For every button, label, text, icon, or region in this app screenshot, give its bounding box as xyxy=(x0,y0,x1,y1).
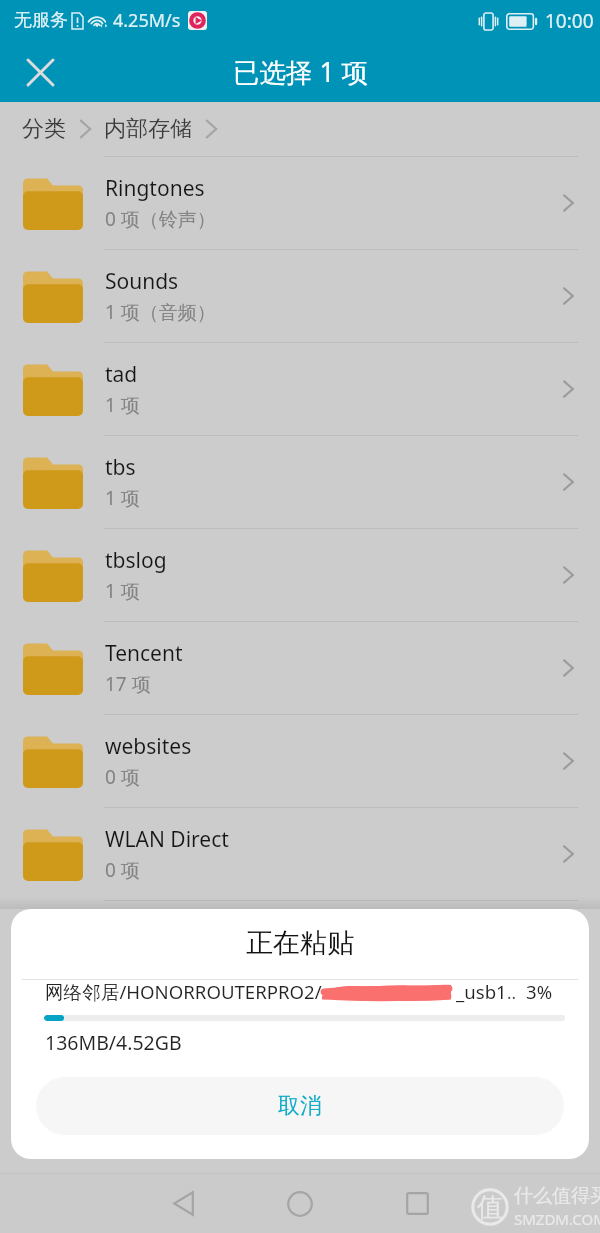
staticText: 1 项 xyxy=(105,392,140,418)
button[interactable]: Recents xyxy=(386,1174,448,1233)
staticText: 取消 xyxy=(278,1092,322,1120)
button[interactable]: WLAN Direct xyxy=(0,808,600,901)
staticText: Sounds xyxy=(105,267,179,296)
button[interactable]: Home xyxy=(269,1174,331,1233)
staticText: 4.25M/s xyxy=(113,8,181,33)
staticText: 136MB/4.52GB xyxy=(45,1029,182,1056)
button[interactable]: websites xyxy=(0,715,600,808)
button[interactable]: tbslog xyxy=(0,529,600,622)
staticText: WLAN Direct xyxy=(105,825,229,854)
staticText: 17 项 xyxy=(105,671,151,697)
staticText: 值 xyxy=(477,1191,503,1224)
button[interactable]: Tencent xyxy=(0,622,600,715)
button[interactable]: 内部存储 xyxy=(104,115,224,143)
button[interactable]: Back xyxy=(152,1174,214,1233)
staticText: 1 项 xyxy=(105,485,140,511)
button[interactable]: 分类 xyxy=(22,115,104,143)
staticText: SMZDM.COM xyxy=(514,1209,600,1229)
staticText: tbs xyxy=(105,453,136,482)
staticText: 内部存储 xyxy=(104,115,192,143)
staticText: 什么值得买 xyxy=(514,1184,600,1208)
staticText: 0 项 xyxy=(105,857,140,883)
button[interactable]: Sounds xyxy=(0,250,600,343)
button[interactable]: tbs xyxy=(0,436,600,529)
staticText: 1 项（音频） xyxy=(105,299,216,325)
staticText: 1 项 xyxy=(105,578,140,604)
staticText: 已选择 1 项 xyxy=(233,54,368,90)
staticText: tbslog xyxy=(105,546,167,575)
staticText: 无服务 xyxy=(14,9,68,32)
staticText: websites xyxy=(105,732,192,761)
staticText: 网络邻居/HONORROUTERPRO2/ xyxy=(45,979,322,1003)
staticText: Tencent xyxy=(105,639,183,668)
staticText: Ringtones xyxy=(105,174,205,203)
button[interactable]: Ringtones xyxy=(0,157,600,250)
staticText: _usb1 xyxy=(456,979,507,1003)
staticText: 0 项（铃声） xyxy=(105,206,216,232)
staticText: ... xyxy=(507,981,518,1004)
staticText: 10:00 xyxy=(545,8,594,34)
button[interactable]: tad xyxy=(0,343,600,436)
staticText: 0 项 xyxy=(105,764,140,790)
staticText: tad xyxy=(105,360,138,389)
staticText: 分类 xyxy=(22,115,66,143)
button[interactable]: Close xyxy=(16,48,64,96)
staticText: 3% xyxy=(526,979,553,1003)
staticText: 正在粘贴 xyxy=(246,926,354,960)
button[interactable]: 取消 xyxy=(36,1077,564,1135)
